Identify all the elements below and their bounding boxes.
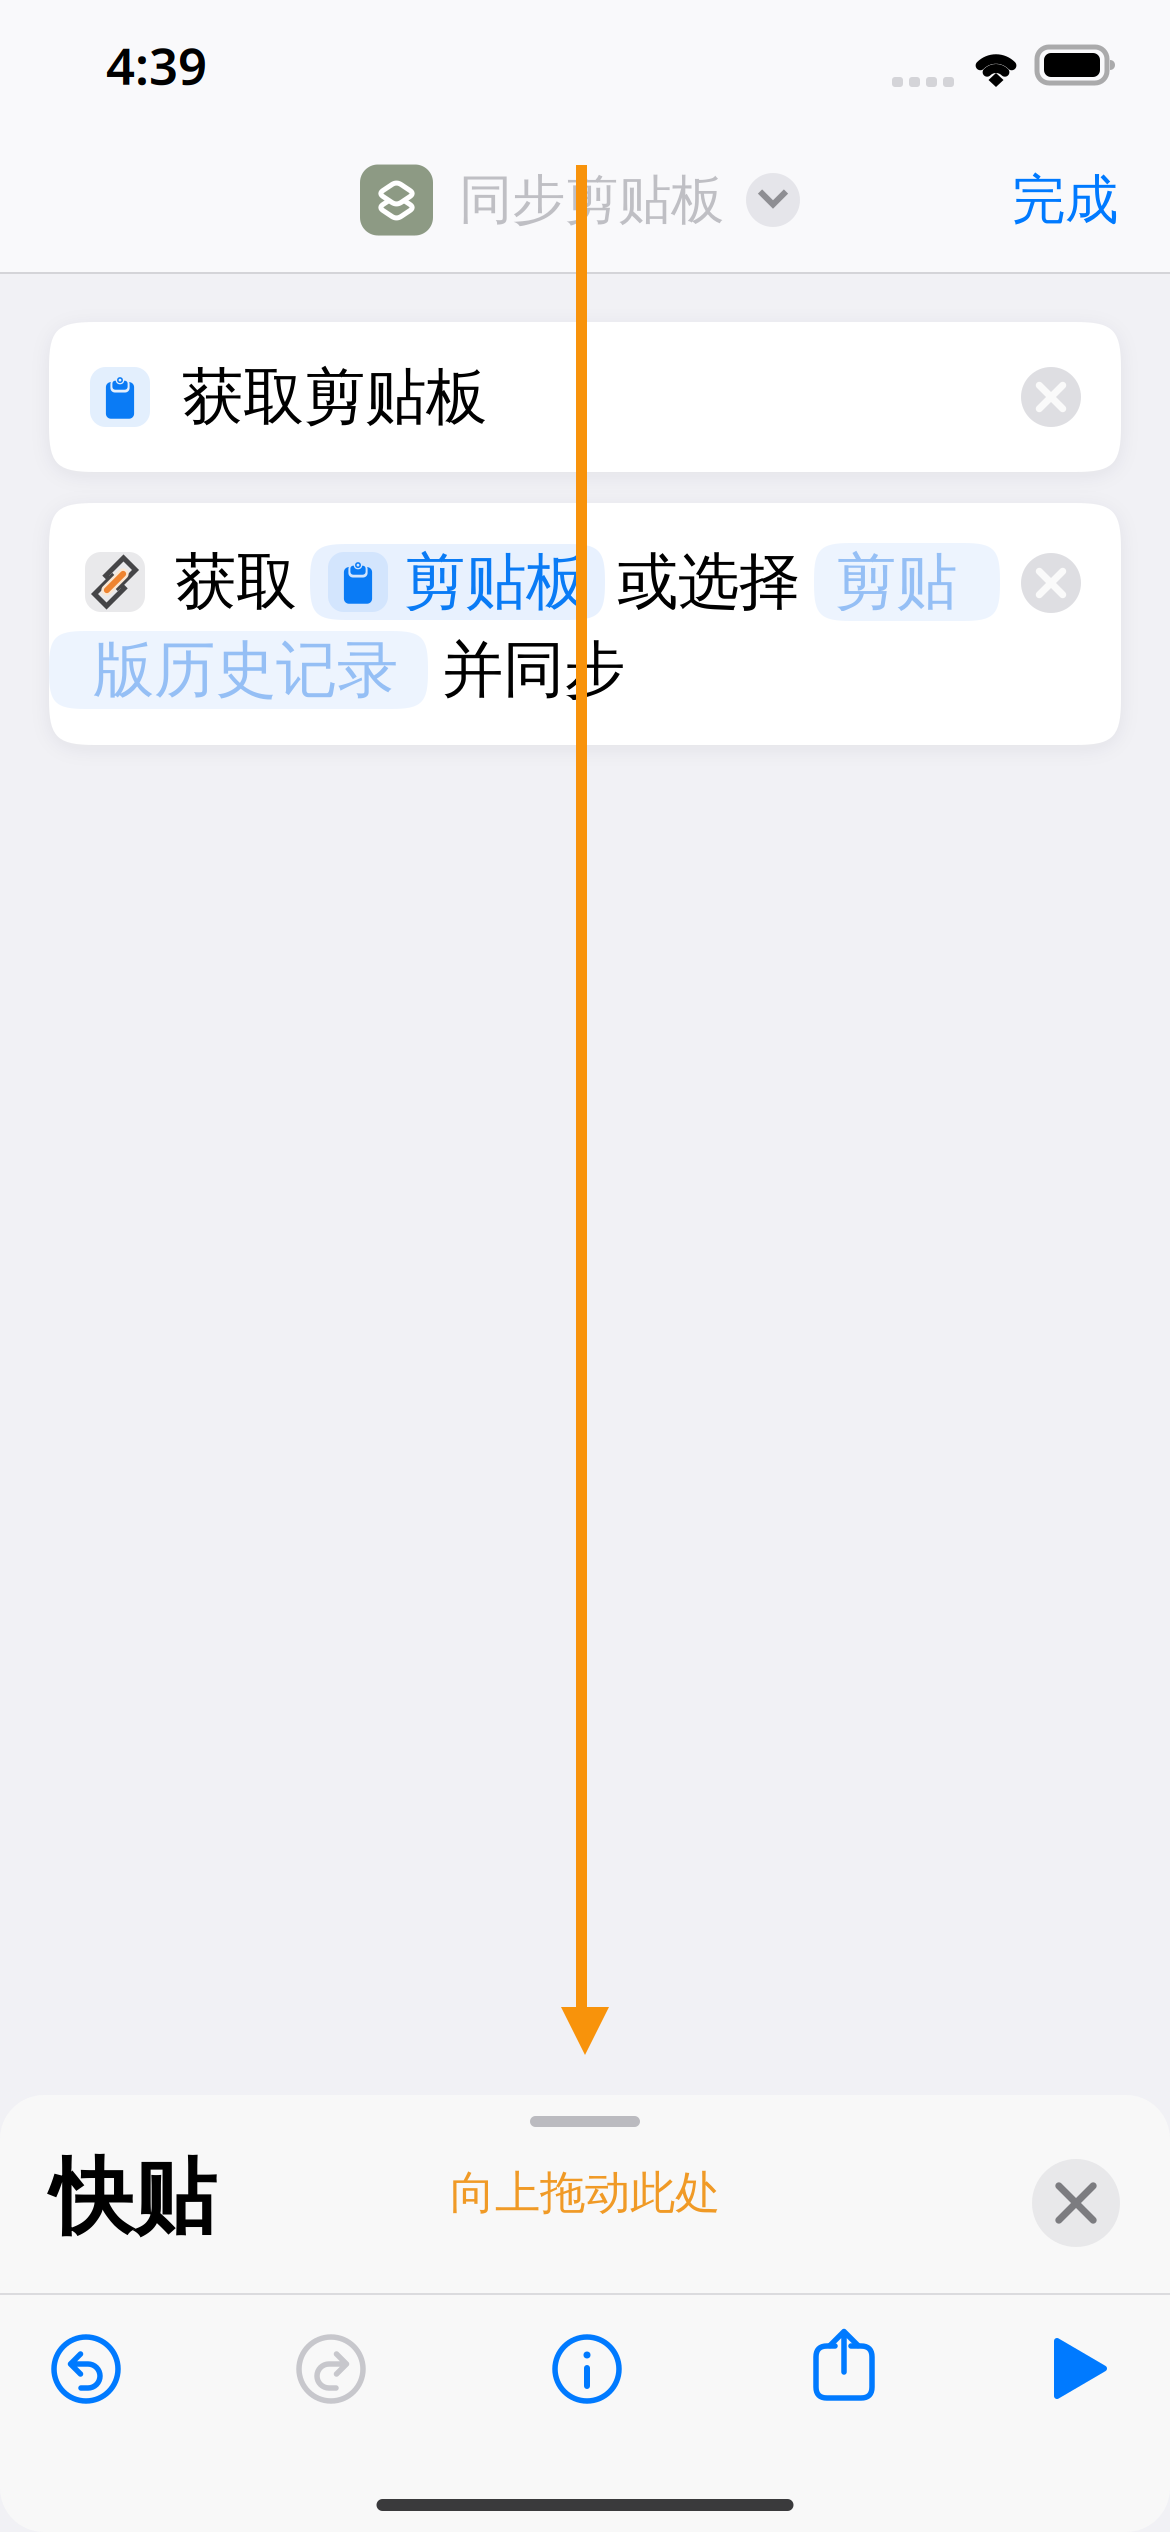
button[interactable]: 获取 — [49, 503, 1121, 745]
button[interactable]: Close — [1032, 2159, 1120, 2247]
button[interactable]: 快贴 — [50, 2147, 216, 2248]
staticText: 同步剪贴板 — [459, 167, 724, 233]
staticText: 版历史记录 — [93, 632, 398, 708]
button[interactable]: 同步剪贴板 — [360, 164, 800, 235]
staticText: 获取 — [175, 544, 297, 620]
staticText: 获取剪贴板 — [182, 359, 487, 435]
staticText: 并同步 — [442, 632, 625, 708]
button[interactable]: Info — [551, 2333, 623, 2405]
button[interactable]: 完成 — [1012, 167, 1118, 233]
button[interactable]: 获取剪贴板 — [49, 322, 1121, 472]
staticText: 或选择 — [617, 544, 800, 620]
staticText: 4:39 — [106, 31, 207, 99]
staticText: 向上拖动此处 — [450, 2165, 720, 2221]
staticText: 完成 — [1012, 167, 1118, 233]
button[interactable]: Share — [807, 2333, 879, 2405]
button[interactable]: Undo — [50, 2333, 122, 2405]
button[interactable]: Redo — [295, 2333, 367, 2405]
staticText: 快贴 — [50, 2147, 216, 2248]
staticText: 剪贴 — [835, 544, 957, 620]
button[interactable]: Run — [1040, 2333, 1112, 2405]
staticText: 剪贴板 — [404, 544, 587, 620]
